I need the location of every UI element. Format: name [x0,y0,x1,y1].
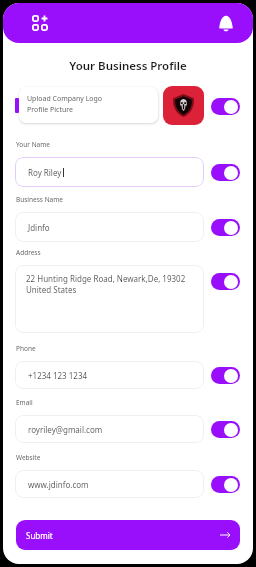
staticText: royriley@gmail.com [28,424,103,435]
button[interactable]: Toggle [211,421,240,438]
staticText: Jdinfo [28,222,50,233]
button[interactable]: Upload Company Logo [19,87,158,123]
button[interactable]: Toggle [211,476,240,493]
button[interactable]: +1234 123 1234 [15,361,204,389]
staticText: +1234 123 1234 [28,370,88,381]
button[interactable]: Toggle [211,164,240,181]
button[interactable]: Toggle [211,98,240,115]
staticText: Your Name [16,140,51,149]
button[interactable]: www.jdinfo.com [15,470,204,498]
staticText: www.jdinfo.com [28,479,89,490]
button[interactable]: 22 Hunting Ridge Road, Newark,De, 19302 … [15,265,204,333]
staticText: Upload Company Logo [27,94,103,104]
button[interactable]: royriley@gmail.com [15,415,204,443]
staticText: Submit [26,530,53,541]
staticText: Website [16,453,41,462]
staticText: Your Business Profile [3,58,253,74]
button[interactable]: Toggle [211,219,240,236]
staticText: Roy Riley [28,167,62,178]
button[interactable]: Add [32,15,48,31]
staticText: Business Name [16,195,63,204]
button[interactable]: Submit [16,520,240,550]
staticText: Phone [16,344,36,353]
staticText: Profile Picture [27,105,73,115]
button[interactable]: Jdinfo [15,212,204,242]
staticText: Address [16,248,41,257]
button[interactable]: Company logo [163,86,204,125]
button[interactable]: Roy Riley [15,157,204,187]
staticText: Email [16,398,33,407]
button[interactable]: Toggle [211,273,240,290]
button[interactable]: Notifications [219,15,233,31]
staticText: 22 Hunting Ridge Road, Newark,De, 19302 … [26,273,186,296]
button[interactable]: Toggle [211,367,240,384]
